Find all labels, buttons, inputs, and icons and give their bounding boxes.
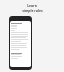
staticText: simple rules — [22, 8, 43, 13]
staticText: Learn — [27, 3, 37, 8]
